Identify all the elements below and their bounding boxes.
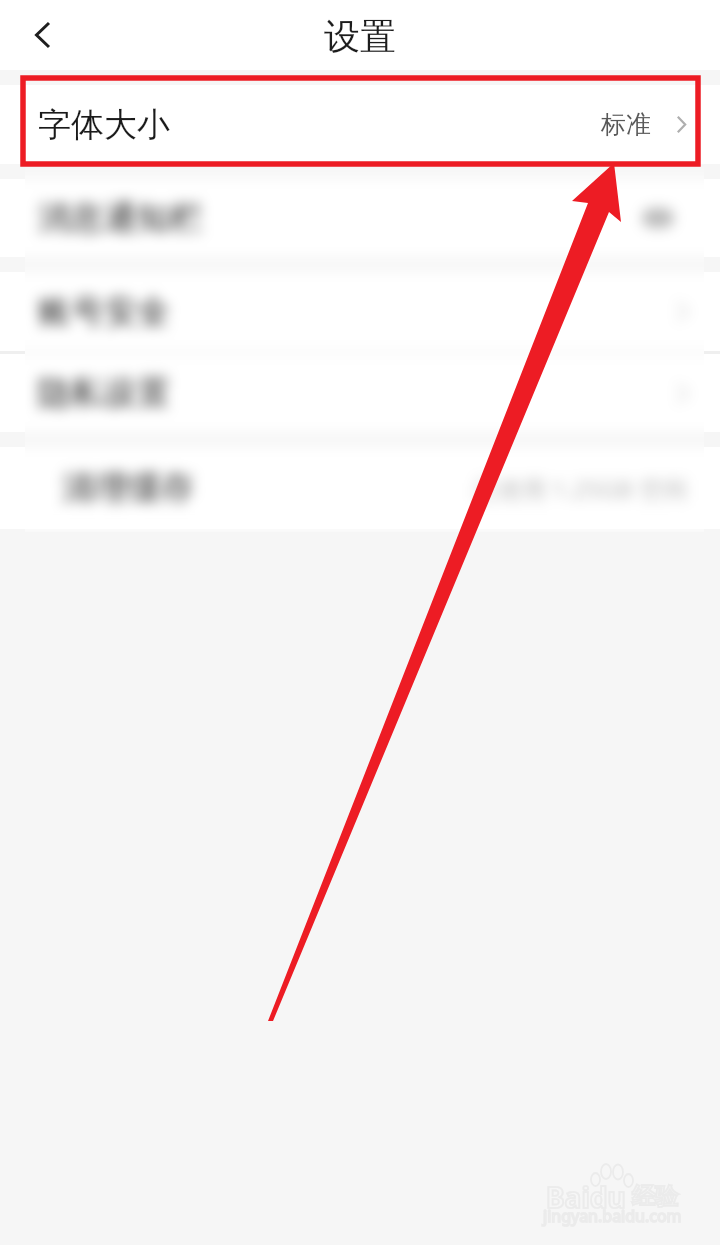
button[interactable]: Back: [18, 11, 66, 59]
button[interactable]: [0, 179, 720, 257]
staticText: 已使用 1.25GB 空间: [474, 472, 688, 505]
staticText: 经验: [632, 1182, 678, 1211]
button[interactable]: [0, 272, 720, 351]
button[interactable]: [0, 447, 720, 529]
staticText: 设置: [324, 14, 396, 59]
staticText: 账号安全: [38, 291, 170, 333]
button[interactable]: [0, 354, 720, 432]
button[interactable]: 字体大小: [0, 85, 720, 164]
staticText: 隐私设置: [38, 372, 170, 414]
staticText: 字体大小: [38, 104, 170, 146]
staticText: Baidu: [546, 1178, 626, 1216]
staticText: 清理缓存: [62, 467, 194, 509]
staticText: 消息通知栏: [38, 197, 203, 239]
staticText: jingyan.baidu.com: [543, 1205, 682, 1227]
staticText: 标准: [601, 109, 651, 140]
